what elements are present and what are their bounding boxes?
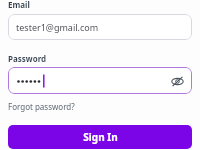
button[interactable]: Forgot password? <box>8 101 75 112</box>
staticText: Forgot password? <box>8 101 75 112</box>
button[interactable]: tester1@gmail.com <box>8 14 192 40</box>
staticText: Password <box>8 53 47 64</box>
staticText: Sign In <box>83 130 118 144</box>
staticText: tester1@gmail.com <box>16 21 99 33</box>
staticText: Email <box>8 0 30 10</box>
button[interactable]: Sign In <box>8 125 192 149</box>
button[interactable]: Hide password <box>8 67 192 94</box>
button[interactable]: Hide password <box>170 74 184 88</box>
